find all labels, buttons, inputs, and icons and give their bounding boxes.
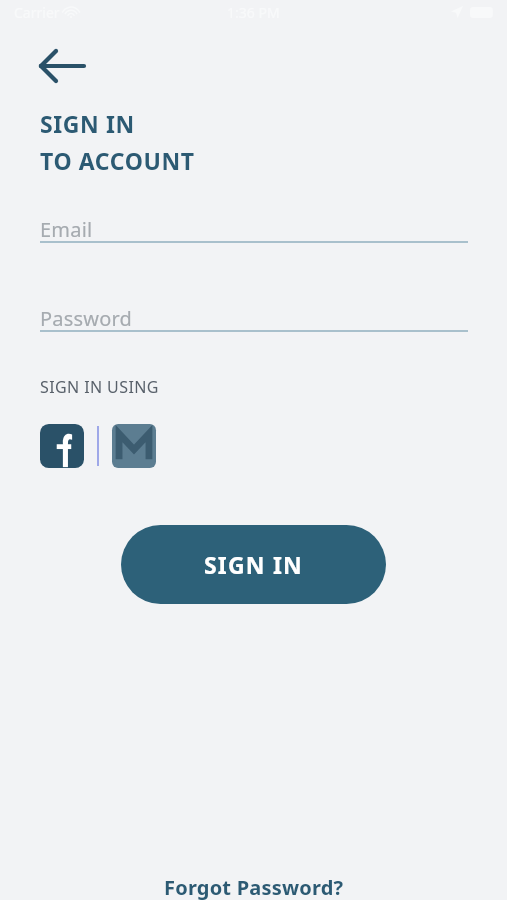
button[interactable]: SIGN IN xyxy=(121,525,386,604)
button[interactable]: Forgot Password? xyxy=(0,874,507,900)
staticText: Email xyxy=(40,216,93,243)
staticText: TO ACCOUNT xyxy=(40,145,195,176)
button[interactable]: Back xyxy=(30,44,94,88)
staticText: Password xyxy=(40,305,133,332)
staticText: Forgot Password? xyxy=(164,874,344,900)
staticText: SIGN IN xyxy=(204,549,303,580)
staticText: SIGN IN xyxy=(40,108,135,139)
staticText: SIGN IN USING xyxy=(40,376,159,398)
button[interactable]: Sign in with Google xyxy=(112,424,156,468)
button[interactable]: Password xyxy=(40,299,468,334)
button[interactable]: Sign in with Facebook xyxy=(40,424,84,468)
button[interactable]: Email xyxy=(40,210,468,245)
